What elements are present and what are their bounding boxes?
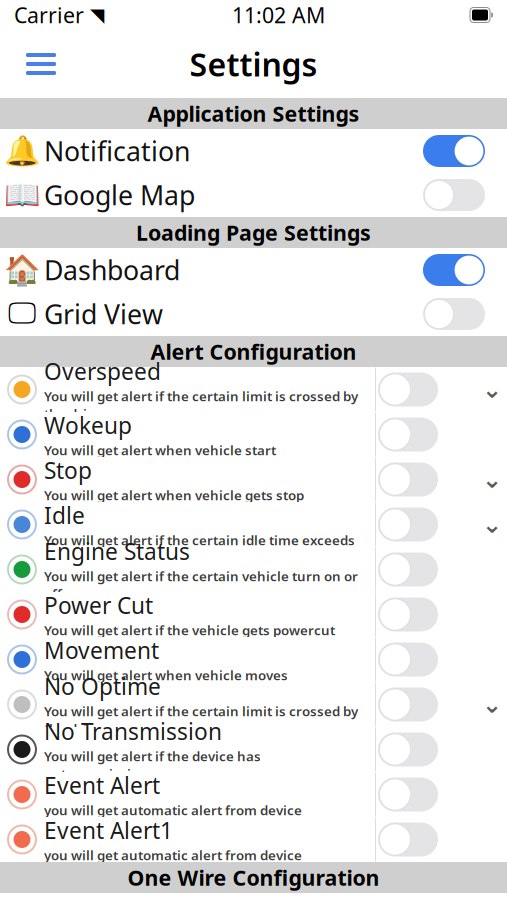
staticText: You will get alert if the certain limit … <box>44 702 358 738</box>
staticText: ⌄ <box>482 466 502 493</box>
staticText: ⌄ <box>482 511 502 538</box>
staticText: you will get automatic alert from device <box>44 801 302 819</box>
staticText: Wokeup <box>44 410 132 440</box>
staticText: Idle <box>44 500 85 530</box>
staticText: Movement <box>44 635 159 665</box>
staticText: 🖵 <box>8 300 36 328</box>
button[interactable]: Wokeup <box>0 412 507 457</box>
button[interactable]: No Transmission <box>0 727 507 772</box>
staticText: You will get alert when vehicle moves <box>44 666 288 684</box>
staticText: Application Settings <box>147 99 359 128</box>
staticText: You will get alert if the certain vehicl… <box>44 567 358 603</box>
staticText: ⌄ <box>482 691 502 718</box>
button[interactable]: Idle <box>0 502 507 547</box>
button[interactable]: Menu <box>18 45 64 83</box>
button[interactable]: Overspeed <box>0 367 507 412</box>
button[interactable]: Event Alert <box>0 772 507 817</box>
staticText: Alert Configuration <box>150 337 356 366</box>
staticText: No Optime <box>44 671 161 701</box>
button[interactable]: Engine Status <box>0 547 507 592</box>
staticText: 11:02 AM <box>232 1 325 29</box>
staticText: You will get alert when vehicle start <box>44 441 276 459</box>
staticText: ⌄ <box>482 376 502 403</box>
staticText: 🔔 <box>3 134 40 168</box>
staticText: Stop <box>44 455 92 485</box>
button[interactable]: No Optime <box>0 682 507 727</box>
staticText: You will get alert if the device has not… <box>44 747 261 783</box>
button[interactable]: Movement <box>0 637 507 682</box>
staticText: 🏠 <box>3 253 40 287</box>
staticText: Google Map <box>44 177 195 213</box>
staticText: Settings <box>189 43 317 85</box>
staticText: Overspeed <box>44 356 161 386</box>
staticText: Event Alert <box>44 770 160 800</box>
staticText: You will get alert if the vehicle gets p… <box>44 621 335 639</box>
button[interactable]: Stop <box>0 457 507 502</box>
staticText: You will get alert when vehicle gets sto… <box>44 486 304 504</box>
button[interactable]: 🏠 <box>0 248 507 292</box>
staticText: Loading Page Settings <box>136 218 371 247</box>
staticText: Event Alert1 <box>44 815 173 845</box>
staticText: Dashboard <box>44 252 180 288</box>
staticText: No Transmission <box>44 716 222 746</box>
staticText: Notification <box>44 133 190 169</box>
button[interactable]: 🔔 <box>0 129 507 173</box>
staticText: Carrier <box>14 1 84 29</box>
button[interactable]: Event Alert1 <box>0 817 507 862</box>
button[interactable]: 🖵 <box>0 292 507 336</box>
staticText: You will get alert if the certain idle t… <box>44 531 355 549</box>
staticText: ◥ <box>90 4 104 26</box>
staticText: You will get alert if the certain limit … <box>44 387 358 423</box>
staticText: Grid View <box>44 296 163 332</box>
button[interactable]: Power Cut <box>0 592 507 637</box>
staticText: One Wire Configuration <box>127 863 379 892</box>
staticText: Power Cut <box>44 590 153 620</box>
button[interactable]: 📖 <box>0 173 507 217</box>
staticText: you will get automatic alert from device <box>44 846 302 864</box>
staticText: 📖 <box>3 178 40 212</box>
staticText: Engine Status <box>44 536 190 566</box>
